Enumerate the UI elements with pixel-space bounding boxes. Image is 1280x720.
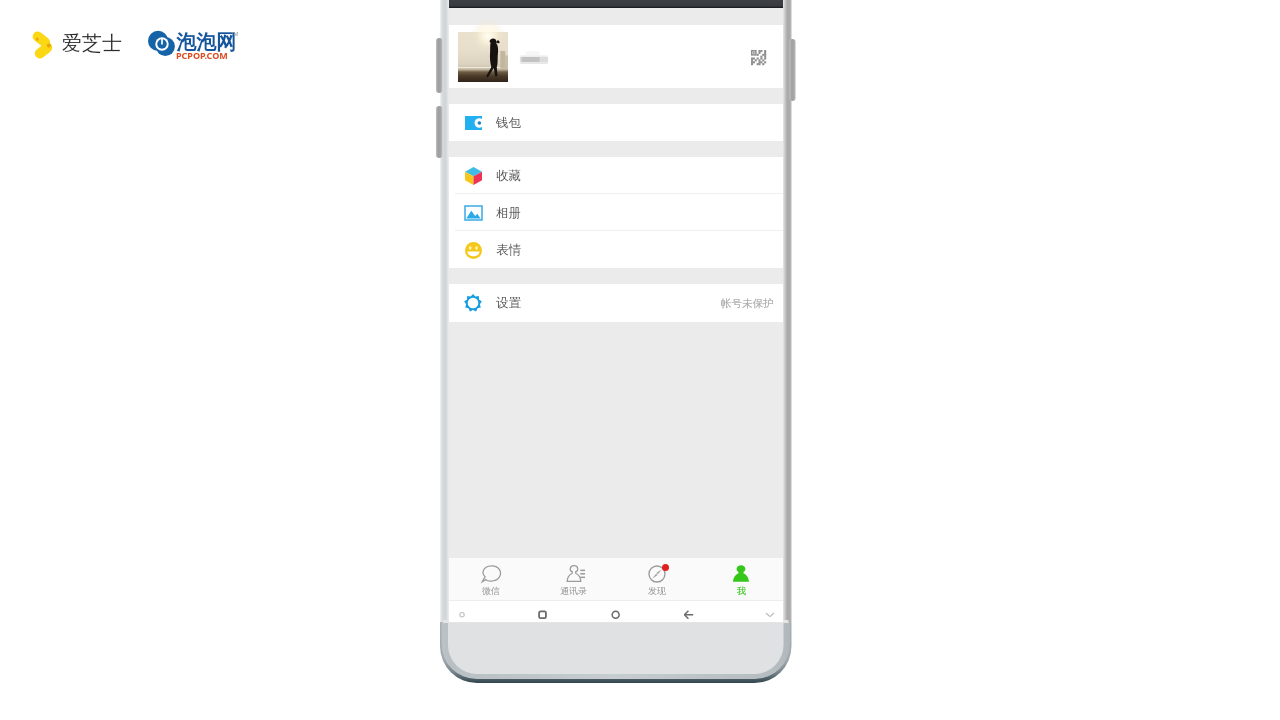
button[interactable]: 我 — [699, 558, 783, 601]
staticText: 表情 — [496, 242, 521, 258]
staticText: 爱芝士 — [62, 31, 122, 56]
staticText: 发现 — [648, 585, 666, 596]
button[interactable]: 钱包 — [449, 104, 783, 141]
button[interactable]: 通讯录 — [532, 558, 615, 601]
staticText: 我 — [737, 585, 746, 596]
button[interactable]: My QR code — [449, 25, 783, 88]
button[interactable]: My QR code — [745, 44, 771, 70]
staticText: 相册 — [496, 205, 521, 221]
button[interactable]: 设置 — [449, 284, 783, 322]
staticText: PCPOP.COM — [176, 49, 228, 61]
button[interactable]: 发现 — [615, 558, 699, 601]
button[interactable]: 相册 — [449, 194, 783, 231]
staticText: 设置 — [496, 295, 521, 311]
staticText: 钱包 — [496, 115, 521, 131]
button[interactable]: 表情 — [449, 231, 783, 268]
staticText: TM — [231, 31, 239, 38]
button[interactable]: 收藏 — [449, 157, 783, 194]
staticText: 泡泡网 — [176, 30, 236, 55]
button[interactable]: 微信 — [449, 558, 532, 601]
staticText: 通讯录 — [560, 585, 587, 596]
staticText: 帐号未保护 — [721, 297, 774, 310]
staticText: 收藏 — [496, 168, 521, 184]
staticText: 微信 — [482, 585, 500, 596]
